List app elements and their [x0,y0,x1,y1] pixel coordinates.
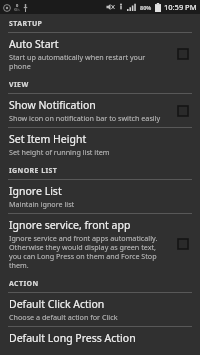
staticText: Default Click Action [9,297,105,311]
staticText: STARTUP [9,19,43,29]
staticText: Ignore service, front app [9,218,131,232]
staticText: Set Item Height [9,132,87,146]
button[interactable]: Default Long Press Action [0,327,200,349]
staticText: KB/s [14,8,20,12]
button[interactable]: Auto Start [0,33,200,75]
staticText: 0 [16,3,19,8]
button[interactable]: Toggle Show Notification [174,102,192,120]
staticText: Ignore List [9,184,62,198]
staticText: Maintain ignore list [9,199,75,209]
button[interactable]: Show Notification [0,94,200,127]
button[interactable]: Toggle Auto Start [174,45,192,63]
staticText: IGNORE LIST [9,166,58,176]
staticText: ACTION [9,279,39,289]
staticText: VIEW [9,80,29,90]
staticText: Ignore service and front apps automatica… [9,233,168,270]
staticText: Default Long Press Action [9,331,136,345]
staticText: Show icon on notification bar to switch … [9,113,161,123]
staticText: Show Notification [9,98,96,112]
button[interactable]: Set Item Height [0,128,200,161]
button[interactable]: Default Click Action [0,293,200,326]
staticText: Choose a default action for Click [9,312,118,322]
staticText: Set height of running list item [9,147,110,157]
staticText: Start up automatically when restart your… [9,52,168,71]
staticText: 10:59 PM [164,2,197,12]
button[interactable]: Ignore List [0,180,200,213]
button[interactable]: Ignore service, front app [0,214,200,274]
staticText: Auto Start [9,37,59,51]
button[interactable]: Toggle Ignore service, front app [174,235,192,253]
staticText: 80% [140,4,152,11]
